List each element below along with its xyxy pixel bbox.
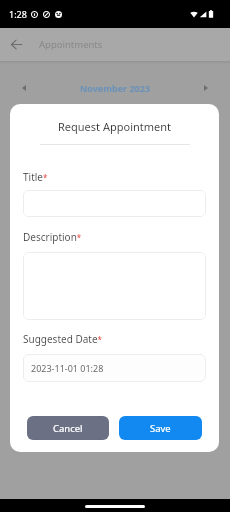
staticText: Save: [150, 422, 171, 435]
staticText: Title*: [23, 170, 48, 184]
staticText: Cancel: [53, 422, 83, 435]
button[interactable]: Previous month: [8, 72, 40, 104]
button[interactable]: 2023-11-01 01:28: [23, 354, 206, 382]
staticText: Description*: [23, 230, 82, 244]
button[interactable]: Save: [119, 416, 202, 440]
button[interactable]: Next month: [190, 72, 222, 104]
staticText: November 2023: [40, 82, 190, 94]
button[interactable]: [23, 190, 206, 217]
staticText: Request Appointment: [10, 119, 219, 134]
button[interactable]: [23, 252, 206, 320]
button[interactable]: Back: [0, 28, 33, 61]
staticText: 1:28: [9, 8, 27, 20]
button[interactable]: Cancel: [27, 416, 109, 440]
staticText: 2023-11-01 01:28: [31, 362, 104, 374]
staticText: Suggested Date*: [23, 332, 102, 346]
staticText: Appointments: [39, 38, 103, 51]
